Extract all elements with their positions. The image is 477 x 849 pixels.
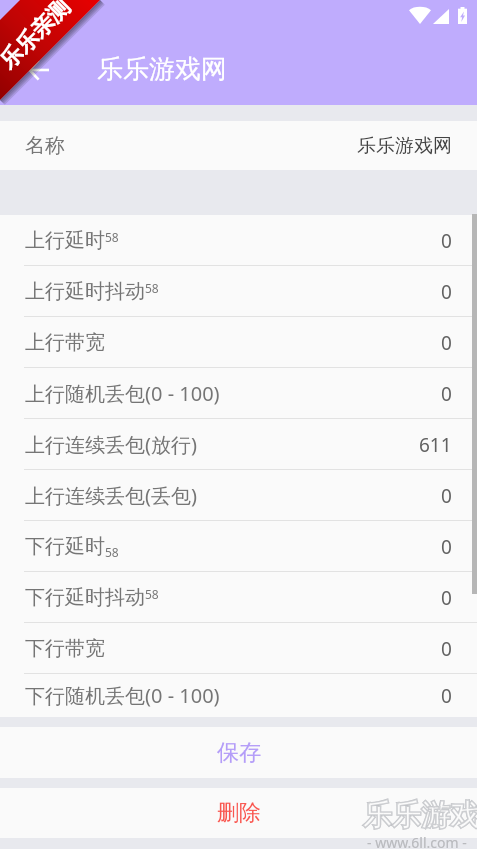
- button[interactable]: 下行带宽: [0, 623, 477, 674]
- button[interactable]: 名称: [0, 121, 477, 170]
- staticText: - www.6ll.com -: [367, 833, 467, 849]
- staticText: 下行延时抖动58: [25, 585, 159, 610]
- button[interactable]: 上行连续丢包(放行): [0, 419, 477, 470]
- staticText: 删除: [217, 799, 261, 827]
- staticText: 乐乐游戏: [363, 797, 477, 834]
- staticText: 保存: [217, 739, 261, 767]
- staticText: 名称: [25, 133, 65, 158]
- staticText: 乐乐游戏: [363, 797, 477, 834]
- staticText: 上行连续丢包(放行): [25, 431, 197, 458]
- button[interactable]: 上行延时抖动58: [0, 266, 477, 317]
- button[interactable]: 删除: [0, 788, 477, 838]
- staticText: 下行带宽: [25, 636, 105, 661]
- staticText: 0: [441, 228, 452, 254]
- button[interactable]: 上行随机丢包(0 - 100): [0, 368, 477, 419]
- staticText: 0: [441, 683, 452, 709]
- staticText: 上行连续丢包(丢包): [25, 482, 197, 509]
- staticText: 0: [441, 381, 452, 407]
- staticText: 上行带宽: [25, 330, 105, 355]
- staticText: 上行随机丢包(0 - 100): [25, 380, 220, 407]
- staticText: 0: [441, 585, 452, 611]
- staticText: 上行延时58: [25, 228, 119, 253]
- staticText: 0: [441, 330, 452, 356]
- staticText: 上行延时抖动58: [25, 279, 159, 304]
- button[interactable]: 保存: [0, 727, 477, 778]
- staticText: 611: [419, 432, 452, 458]
- staticText: 0: [441, 483, 452, 509]
- staticText: 乐乐亲测: [0, 0, 76, 75]
- staticText: 乐乐游戏网: [357, 134, 452, 158]
- button[interactable]: Back: [11, 42, 67, 98]
- button[interactable]: 下行延时58: [0, 521, 477, 572]
- staticText: 乐乐游戏网: [97, 53, 227, 86]
- button[interactable]: 上行延时58: [0, 215, 477, 266]
- button[interactable]: 下行随机丢包(0 - 100): [0, 674, 477, 717]
- staticText: 0: [441, 279, 452, 305]
- staticText: 下行随机丢包(0 - 100): [25, 682, 220, 709]
- button[interactable]: 上行连续丢包(丢包): [0, 470, 477, 521]
- staticText: 0: [441, 534, 452, 560]
- staticText: 下行延时58: [25, 534, 119, 560]
- staticText: 0: [441, 636, 452, 662]
- button[interactable]: 下行延时抖动58: [0, 572, 477, 623]
- button[interactable]: 上行带宽: [0, 317, 477, 368]
